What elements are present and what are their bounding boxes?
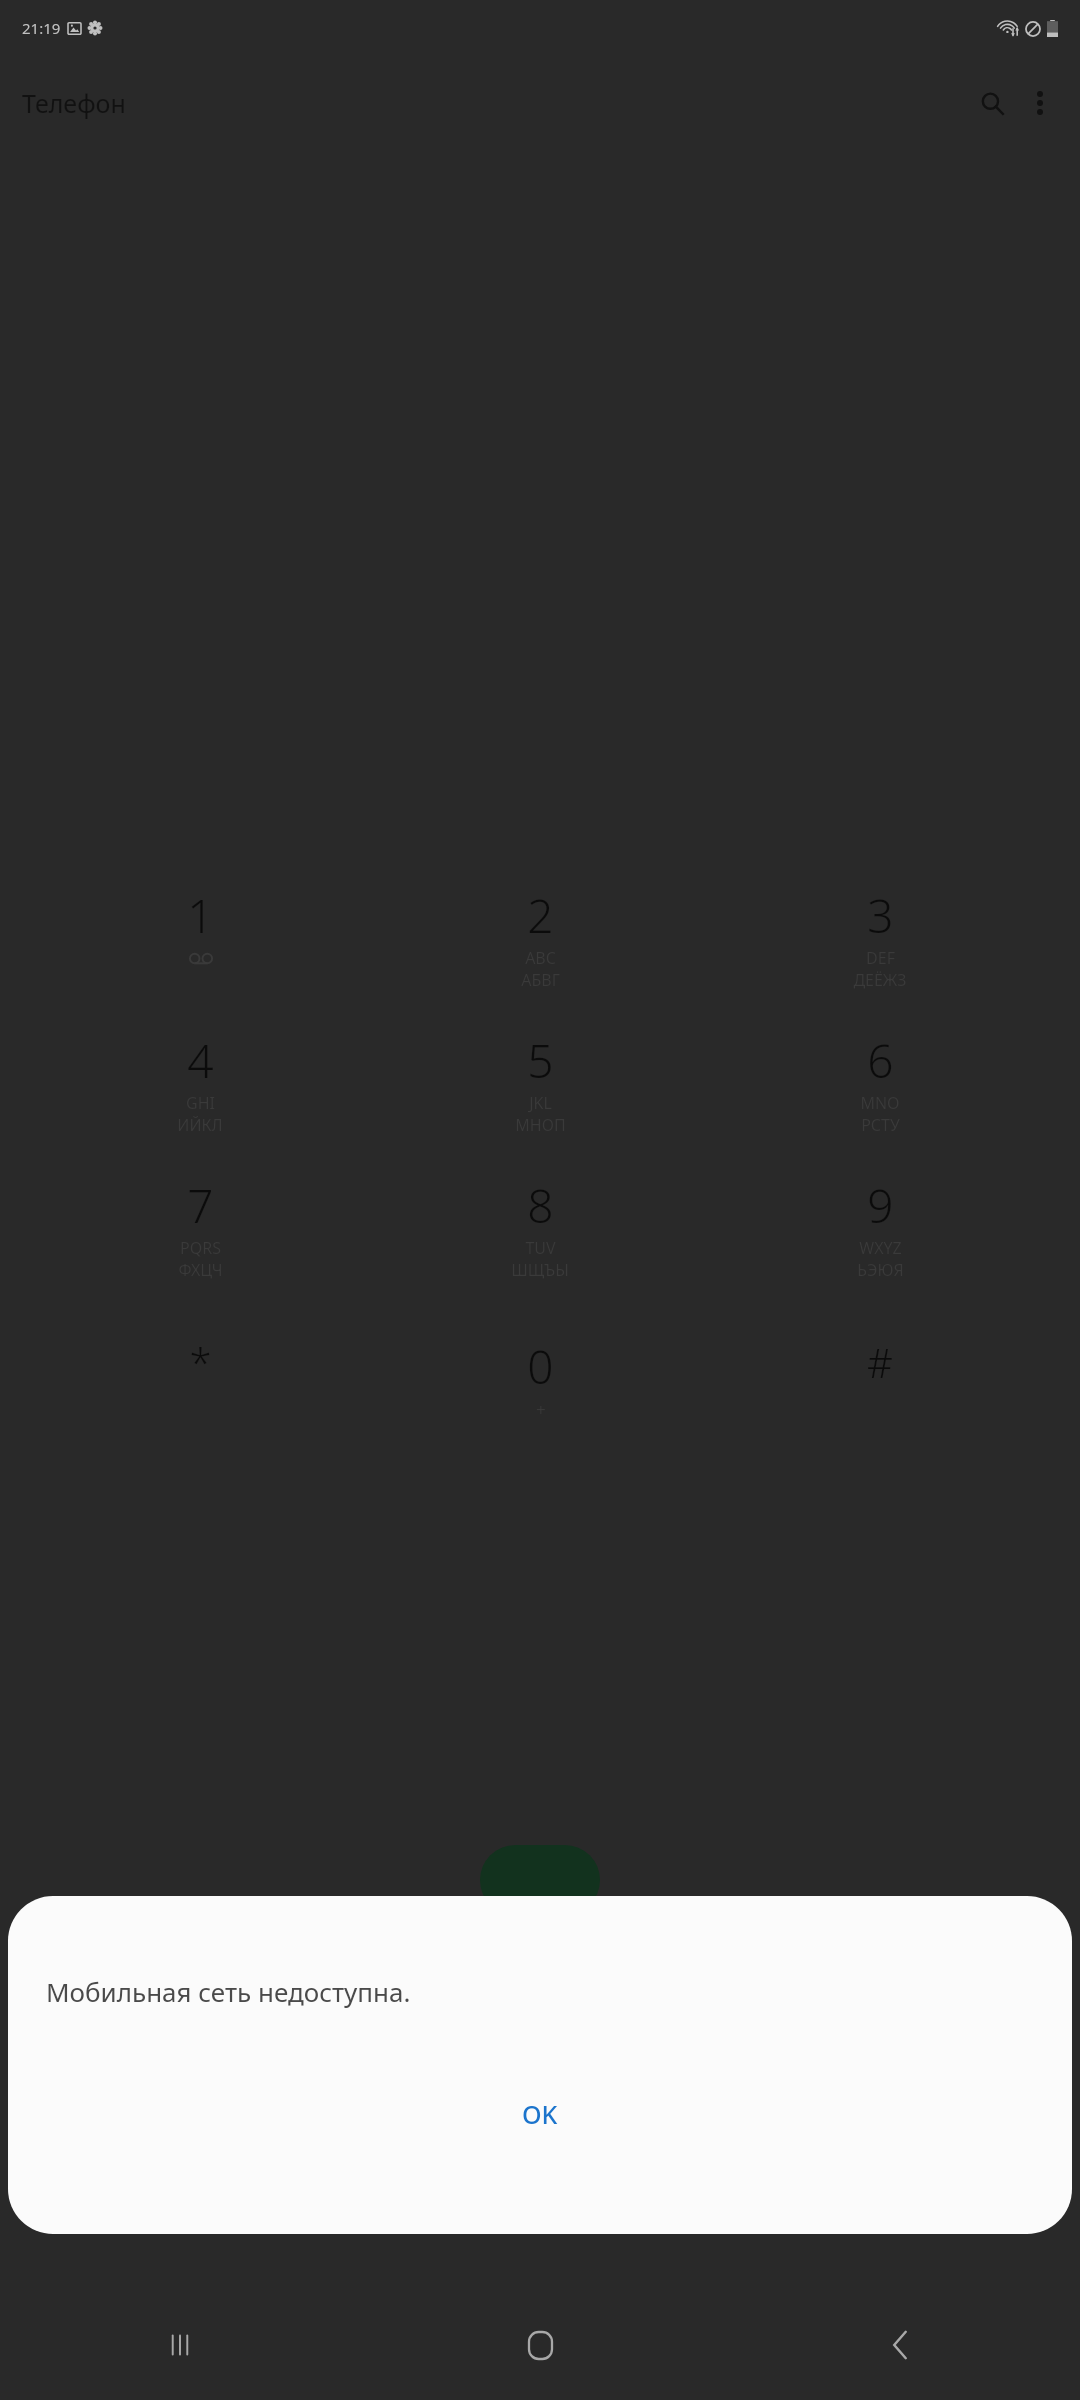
- staticText: Телефон: [22, 86, 126, 120]
- staticText: 4: [187, 1029, 214, 1092]
- staticText: ЬЭЮЯ: [857, 1259, 904, 1281]
- staticText: 3: [867, 884, 894, 947]
- staticText: WXYZ: [859, 1237, 902, 1259]
- staticText: ИЙКЛ: [177, 1114, 223, 1136]
- staticText: TUV: [525, 1237, 556, 1259]
- staticText: GHI: [186, 1092, 215, 1114]
- button[interactable]: Call: [480, 1845, 600, 1915]
- staticText: JKL: [529, 1092, 552, 1114]
- staticText: МНОП: [515, 1114, 566, 1136]
- staticText: PQRS: [180, 1237, 221, 1259]
- staticText: ABC: [525, 947, 556, 969]
- staticText: DEF: [866, 947, 895, 969]
- staticText: Мобильная сеть недоступна.: [46, 1974, 411, 2009]
- staticText: АБВГ: [521, 969, 560, 991]
- staticText: 1: [187, 884, 214, 947]
- staticText: 0: [527, 1335, 554, 1398]
- staticText: 2: [527, 884, 554, 947]
- staticText: 21:19: [22, 18, 61, 38]
- staticText: ДЕЁЖЗ: [853, 969, 907, 991]
- staticText: MNO: [860, 1092, 900, 1114]
- button[interactable]: Back: [720, 2290, 1080, 2400]
- staticText: OK: [522, 2097, 558, 2131]
- staticText: +: [536, 1398, 546, 1421]
- staticText: 7: [187, 1174, 214, 1237]
- button[interactable]: Recents: [0, 2290, 360, 2400]
- button[interactable]: OK: [480, 2081, 600, 2147]
- button[interactable]: More options: [1016, 79, 1064, 127]
- staticText: ФХЦЧ: [178, 1259, 223, 1281]
- staticText: ШЩЪЫ: [511, 1259, 569, 1281]
- staticText: 9: [867, 1174, 894, 1237]
- staticText: 6: [867, 1029, 894, 1092]
- button[interactable]: Search: [968, 79, 1016, 127]
- staticText: РСТУ: [861, 1114, 900, 1136]
- staticText: *: [189, 1335, 212, 1389]
- button[interactable]: Home: [360, 2290, 720, 2400]
- staticText: 8: [527, 1174, 554, 1237]
- staticText: #: [867, 1335, 893, 1389]
- staticText: 5: [527, 1029, 554, 1092]
